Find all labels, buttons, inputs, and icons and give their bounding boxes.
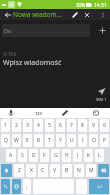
button[interactable]: S xyxy=(18,149,27,162)
staticText: C xyxy=(41,167,45,174)
staticText: 1 xyxy=(4,122,7,129)
button[interactable]: Add recipient xyxy=(95,23,110,38)
button[interactable]: 2 xyxy=(12,119,21,132)
staticText: O xyxy=(92,137,96,144)
staticText: E xyxy=(26,137,29,144)
staticText: Do xyxy=(4,27,12,34)
staticText: Z xyxy=(18,167,21,174)
button[interactable]: 5 xyxy=(45,119,54,132)
staticText: 0/160 xyxy=(3,51,17,58)
button[interactable]: 0 xyxy=(100,119,109,132)
staticText: B xyxy=(65,167,69,174)
staticText: Y xyxy=(59,137,62,144)
button[interactable]: 1 xyxy=(1,119,10,132)
staticText: 123 xyxy=(35,111,42,116)
button[interactable]: Shift xyxy=(1,164,12,177)
staticText: W xyxy=(14,137,19,144)
button[interactable]: More options xyxy=(97,9,109,20)
button[interactable]: 4 xyxy=(34,119,43,132)
staticText: S xyxy=(21,152,24,159)
staticText: 2 xyxy=(15,122,18,129)
button[interactable]: . xyxy=(76,179,87,194)
staticText: Q xyxy=(4,137,8,144)
button[interactable]: Edit xyxy=(69,9,81,20)
button[interactable]: Z xyxy=(14,164,24,177)
staticText: H xyxy=(65,152,69,159)
staticText: M xyxy=(89,167,94,174)
staticText: 30% xyxy=(76,2,85,8)
button[interactable]: Y xyxy=(56,134,65,147)
staticText: 3 xyxy=(26,122,29,129)
staticText: X xyxy=(30,167,33,174)
button[interactable]: J xyxy=(73,149,82,162)
button[interactable]: Send xyxy=(94,87,108,102)
button[interactable]: Numbers xyxy=(33,108,43,118)
button[interactable]: D xyxy=(29,149,38,162)
staticText: K xyxy=(87,152,91,159)
button[interactable]: U xyxy=(67,134,76,147)
button[interactable]: Q xyxy=(1,134,10,147)
button[interactable]: Close xyxy=(81,9,93,20)
button[interactable]: P xyxy=(100,134,109,147)
button[interactable]: N xyxy=(74,164,84,177)
button[interactable]: Voice input xyxy=(6,108,16,118)
button[interactable]: 8 xyxy=(78,119,87,132)
button[interactable]: H xyxy=(62,149,71,162)
button[interactable]: W xyxy=(12,134,21,147)
staticText: 4 xyxy=(37,122,40,129)
staticText: G xyxy=(54,152,58,159)
button[interactable]: Backspace xyxy=(98,164,109,177)
staticText: L xyxy=(98,152,101,159)
button[interactable]: 7 xyxy=(67,119,76,132)
staticText: 8 xyxy=(81,122,84,129)
button[interactable]: Back xyxy=(1,9,14,20)
button[interactable]: Language xyxy=(12,179,21,194)
button[interactable]: T xyxy=(45,134,54,147)
staticText: 14:31 xyxy=(94,2,107,9)
button[interactable]: E xyxy=(23,134,32,147)
button[interactable]: B xyxy=(62,164,72,177)
staticText: V xyxy=(53,167,57,174)
button[interactable]: L xyxy=(95,149,104,162)
button[interactable]: G xyxy=(51,149,60,162)
button[interactable]: A xyxy=(6,149,16,162)
button[interactable]: 6 xyxy=(56,119,65,132)
button[interactable]: X xyxy=(26,164,36,177)
staticText: 5 xyxy=(48,122,51,129)
button[interactable]: K xyxy=(84,149,93,162)
staticText: Nowa wiadom... xyxy=(13,10,62,19)
staticText: 9 xyxy=(92,122,95,129)
button[interactable]: I xyxy=(78,134,87,147)
staticText: D xyxy=(32,152,36,159)
staticText: P xyxy=(103,137,107,144)
button[interactable]: M xyxy=(86,164,96,177)
staticText: U xyxy=(70,137,74,144)
button[interactable]: Handwriting xyxy=(60,108,70,118)
staticText: SIM 1 xyxy=(96,97,107,102)
staticText: N xyxy=(77,167,81,174)
button[interactable]: F xyxy=(40,149,49,162)
button[interactable]: , xyxy=(23,179,31,194)
staticText: . xyxy=(81,183,83,190)
staticText: T xyxy=(48,137,51,144)
button[interactable]: Do xyxy=(2,24,90,37)
staticText: I xyxy=(82,137,84,144)
button[interactable]: C xyxy=(38,164,48,177)
button[interactable]: 9 xyxy=(89,119,98,132)
button[interactable]: R xyxy=(34,134,43,147)
button[interactable]: O xyxy=(89,134,98,147)
button[interactable]: V xyxy=(50,164,60,177)
button[interactable]: Stickers xyxy=(91,108,101,118)
staticText: 7 xyxy=(70,122,73,129)
button[interactable]: 3 xyxy=(23,119,32,132)
staticText: F xyxy=(43,152,46,159)
staticText: 0 xyxy=(103,122,106,129)
staticText: Wpisz wiadomość xyxy=(3,58,62,68)
staticText: A xyxy=(9,152,13,159)
staticText: 6 xyxy=(59,122,62,129)
staticText: R xyxy=(37,137,41,144)
staticText: , xyxy=(26,183,28,190)
button[interactable]: Symbols xyxy=(1,179,10,194)
button[interactable]: Enter xyxy=(89,179,109,194)
